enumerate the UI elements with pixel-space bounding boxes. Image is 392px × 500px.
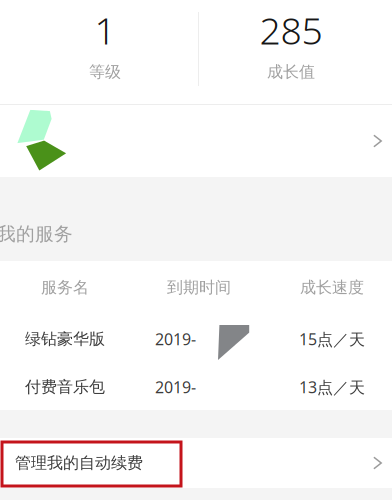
staticText: 2019- [155, 328, 196, 350]
staticText: 付费音乐包 [25, 377, 105, 397]
staticText: 2019- [155, 376, 196, 398]
staticText: 服务名 [41, 278, 89, 297]
staticText: 1 [94, 5, 115, 55]
staticText: 绿钻豪华版 [25, 329, 105, 349]
staticText: 到期时间 [167, 278, 231, 297]
staticText: 13点／天 [299, 376, 365, 398]
staticText: 成长速度 [300, 278, 364, 297]
staticText: 我的服务 [0, 222, 73, 245]
staticText: 15点／天 [299, 328, 365, 350]
button[interactable]: 会员等级 [0, 105, 392, 177]
staticText: 管理我的自动续费 [15, 453, 143, 473]
staticText: 等级 [89, 62, 121, 82]
button[interactable]: 管理我的自动续费 [0, 438, 392, 488]
staticText: 285 [259, 5, 322, 55]
staticText: 成长值 [267, 62, 315, 82]
